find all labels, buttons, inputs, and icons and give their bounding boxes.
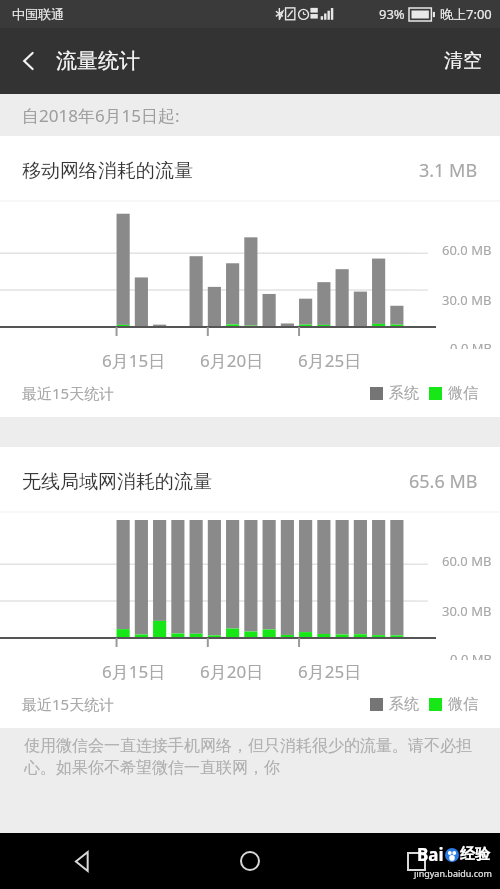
staticText: 流量统计 — [56, 48, 140, 74]
staticText: 使用微信会一直连接手机网络，但只消耗很少的流量。请不必担心。如果你不希望微信一直… — [24, 736, 476, 778]
staticText: 经验 — [460, 845, 490, 864]
staticText: 6月15日 — [102, 349, 200, 372]
staticText: 系统 — [389, 384, 419, 403]
staticText: 6月15日 — [102, 660, 200, 683]
staticText: 移动网络消耗的流量 — [22, 159, 193, 183]
staticText: 6月20日 — [200, 660, 298, 683]
button[interactable]: 无线局域网消耗的流量 — [0, 447, 500, 728]
staticText: 60.0 MB — [442, 552, 492, 570]
staticText: 中国联通 — [12, 6, 64, 22]
staticText: 最近15天统计 — [22, 694, 115, 714]
staticText: 0.0 MB — [450, 339, 492, 349]
staticText: Bai — [417, 843, 444, 866]
staticText: 30.0 MB — [442, 602, 492, 620]
staticText: 65.6 MB — [409, 469, 478, 494]
button[interactable]: 移动网络消耗的流量 — [0, 136, 500, 417]
button[interactable]: Back — [0, 833, 166, 889]
staticText: 晚上7:00 — [440, 5, 492, 23]
staticText: 30.0 MB — [442, 291, 492, 309]
button[interactable]: 清空 — [426, 35, 500, 87]
staticText: 微信 — [448, 695, 478, 714]
staticText: 自2018年6月15日起: — [22, 104, 180, 127]
staticText: 93% — [379, 5, 405, 23]
staticText: 6月20日 — [200, 349, 298, 372]
staticText: 6月25日 — [298, 660, 362, 683]
button[interactable]: Home — [166, 833, 333, 889]
staticText: 最近15天统计 — [22, 383, 115, 403]
staticText: 6月25日 — [298, 349, 362, 372]
button[interactable]: Back — [6, 38, 52, 84]
staticText: 60.0 MB — [442, 241, 492, 259]
staticText: jingyan.baidu.com — [414, 867, 492, 879]
staticText: 清空 — [444, 49, 482, 73]
staticText: 无线局域网消耗的流量 — [22, 470, 212, 494]
staticText: 3.1 MB — [419, 158, 478, 183]
staticText: 系统 — [389, 695, 419, 714]
button[interactable]: Recent apps — [333, 833, 500, 889]
staticText: 微信 — [448, 384, 478, 403]
staticText: 0.0 MB — [450, 650, 492, 660]
